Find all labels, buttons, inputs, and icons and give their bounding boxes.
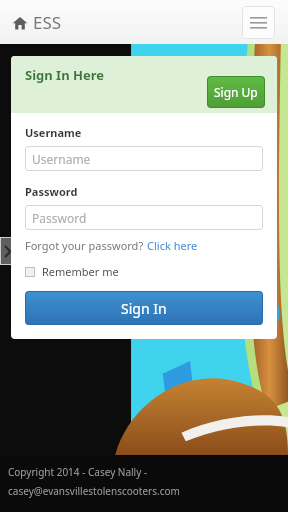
button[interactable]: Remember me [25,264,119,279]
staticText: Remember me [42,264,119,279]
button[interactable]: ESS [12,11,62,34]
button[interactable]: Click here [147,238,198,253]
staticText: Username [32,151,91,167]
staticText: Password [25,184,78,199]
staticText: casey@evansvillestolenscooters.com [8,484,180,498]
staticText: Forgot your password? [25,238,147,253]
button[interactable]: Open panel [0,237,14,265]
staticText: ESS [33,11,62,34]
staticText: Password [32,210,87,226]
button[interactable]: Sign In [25,291,263,325]
button[interactable]: Menu [242,6,275,39]
staticText: Sign In Here [25,66,105,84]
staticText: Sign In [121,299,167,318]
staticText: Username [25,125,82,140]
button[interactable]: Username [25,146,263,171]
button[interactable]: Password [25,205,263,230]
staticText: Sign Up [214,84,258,100]
button[interactable]: Sign Up [207,76,265,108]
staticText: Copyright 2014 - Casey Nally - [8,465,148,479]
